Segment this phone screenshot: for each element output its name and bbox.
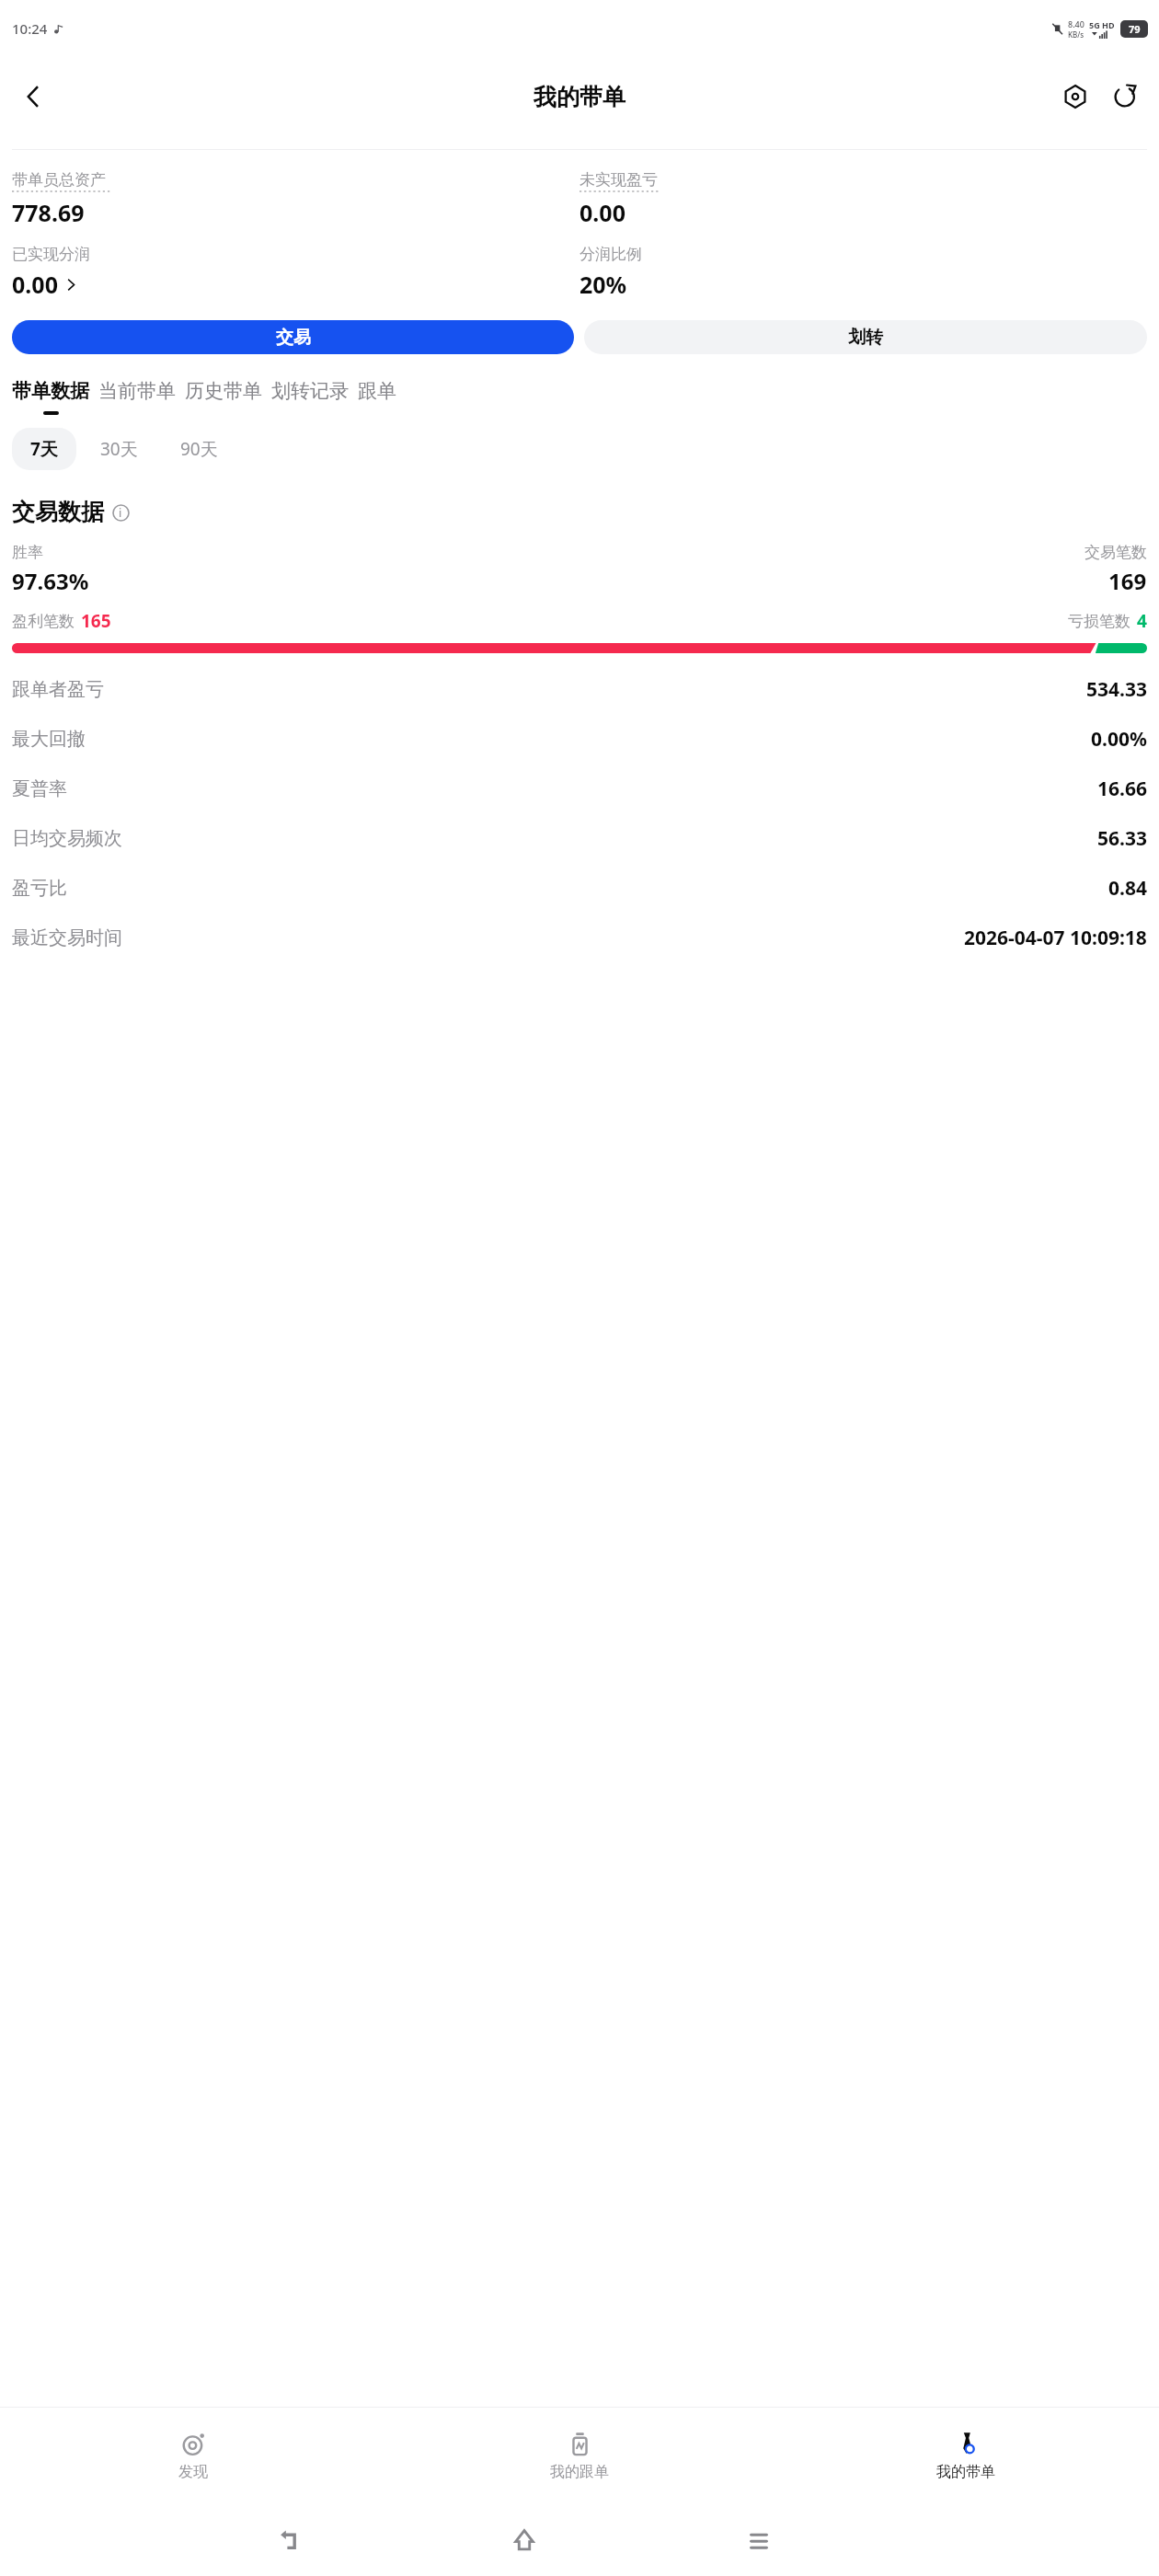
staticText: 169: [1108, 566, 1147, 596]
staticText: 79: [1129, 22, 1141, 36]
staticText: 0.00: [12, 269, 58, 300]
button[interactable]: 跟单: [358, 379, 396, 415]
button[interactable]: 7天: [12, 428, 76, 470]
staticText: 30天: [100, 437, 138, 461]
staticText: 778.69: [12, 197, 85, 228]
button[interactable]: 历史带单: [185, 379, 262, 415]
staticText: 交易: [276, 327, 311, 349]
staticText: i: [119, 505, 122, 520]
staticText: 带单员总资产: [12, 170, 106, 190]
staticText: 534.33: [1086, 676, 1147, 703]
button[interactable]: 0.00: [12, 269, 78, 300]
staticText: 划转记录: [271, 379, 349, 403]
staticText: 20%: [579, 269, 627, 300]
staticText: 划转: [848, 327, 883, 349]
staticText: 历史带单: [185, 379, 262, 403]
staticText: 最大回撤: [12, 728, 86, 751]
button[interactable]: 发现: [0, 2408, 386, 2504]
staticText: 未实现盈亏: [579, 170, 658, 190]
staticText: HD: [1102, 19, 1115, 30]
staticText: 分润比例: [579, 245, 642, 264]
staticText: 16.66: [1097, 776, 1147, 802]
button[interactable]: 我的跟单: [386, 2408, 773, 2504]
staticText: 交易数据: [12, 498, 104, 526]
staticText: 我的带单: [936, 2463, 995, 2481]
staticText: 胜率: [12, 543, 43, 562]
staticText: 已实现分润: [12, 245, 90, 264]
button[interactable]: Back: [7, 71, 59, 122]
staticText: 0.84: [1108, 875, 1147, 902]
button[interactable]: 90天: [162, 428, 236, 470]
button[interactable]: Info: [111, 503, 130, 522]
staticText: 165: [81, 609, 111, 633]
staticText: 夏普率: [12, 777, 67, 800]
button[interactable]: Recents: [736, 2517, 782, 2563]
staticText: 4: [1137, 609, 1147, 633]
staticText: KB/s: [1068, 29, 1084, 40]
staticText: 我的跟单: [550, 2463, 609, 2481]
button[interactable]: 交易: [12, 320, 574, 354]
staticText: 当前带单: [98, 379, 176, 403]
button[interactable]: 划转记录: [271, 379, 349, 415]
staticText: 8.40: [1068, 18, 1084, 29]
staticText: 发现: [178, 2463, 208, 2481]
staticText: 我的带单: [534, 83, 625, 111]
staticText: 盈亏比: [12, 877, 67, 900]
button[interactable]: Back: [267, 2517, 313, 2563]
button[interactable]: 带单数据: [12, 379, 89, 415]
staticText: 56.33: [1097, 825, 1147, 852]
button[interactable]: 当前带单: [98, 379, 176, 415]
staticText: 日均交易频次: [12, 827, 122, 850]
staticText: 2026-04-07 10:09:18: [964, 925, 1147, 951]
button[interactable]: Home: [501, 2517, 547, 2563]
staticText: 跟单者盈亏: [12, 678, 104, 701]
staticText: 亏损笔数: [1068, 612, 1130, 631]
staticText: 跟单: [358, 379, 396, 403]
button[interactable]: 划转: [584, 320, 1147, 354]
staticText: 0.00%: [1091, 726, 1147, 753]
staticText: 10:24: [12, 19, 48, 38]
staticText: 90天: [180, 437, 218, 461]
staticText: 最近交易时间: [12, 926, 122, 949]
staticText: 交易笔数: [1084, 543, 1147, 562]
button[interactable]: 我的带单: [773, 2408, 1159, 2504]
button[interactable]: Share: [1100, 72, 1150, 121]
staticText: 7天: [30, 437, 58, 461]
staticText: 97.63%: [12, 566, 89, 596]
button[interactable]: Settings: [1050, 72, 1100, 121]
staticText: 盈利笔数: [12, 612, 75, 631]
staticText: 0.00: [579, 197, 625, 228]
staticText: 带单数据: [12, 379, 89, 403]
button[interactable]: 30天: [82, 428, 156, 470]
staticText: 5G: [1089, 19, 1100, 30]
